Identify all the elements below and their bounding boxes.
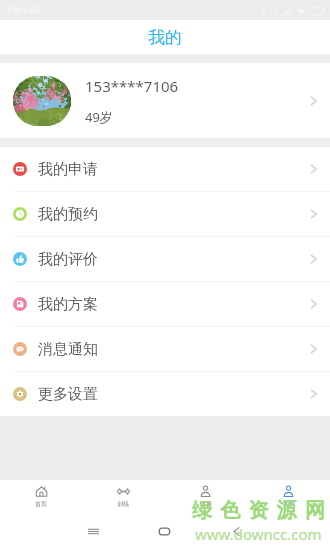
staticText: 我的方案 bbox=[38, 295, 98, 314]
staticText: 绿色资源网 bbox=[188, 498, 329, 523]
button[interactable]: 首页 bbox=[0, 480, 82, 512]
button[interactable]: 更多设置 bbox=[0, 372, 330, 416]
button[interactable]: 训练 bbox=[82, 480, 164, 512]
staticText: 我的预约 bbox=[38, 205, 98, 224]
staticText: 我的评价 bbox=[38, 250, 98, 269]
staticText: 消息通知 bbox=[38, 340, 98, 359]
button[interactable]: 我的申请 bbox=[0, 147, 330, 191]
button[interactable]: 我的评价 bbox=[0, 237, 330, 281]
staticText: 下午2:48 bbox=[4, 4, 40, 16]
other: Recent apps bbox=[88, 526, 99, 537]
staticText: 我的 bbox=[283, 500, 295, 508]
staticText: 我的申请 bbox=[38, 160, 98, 179]
button[interactable]: 我的预约 bbox=[0, 192, 330, 236]
button[interactable]: 我的 bbox=[247, 480, 330, 512]
staticText: 训练 bbox=[117, 500, 129, 508]
staticText: 首页 bbox=[35, 500, 47, 508]
button[interactable]: 153****7106 bbox=[0, 63, 330, 138]
staticText: www.downcc.com bbox=[195, 524, 322, 544]
staticText: 健康 bbox=[200, 500, 212, 508]
staticText: 更多设置 bbox=[38, 385, 98, 404]
staticText: 我的 bbox=[148, 27, 182, 48]
other: Home bbox=[158, 526, 171, 537]
other: Back bbox=[231, 526, 242, 537]
button[interactable]: 健康 bbox=[164, 480, 247, 512]
button[interactable]: 消息通知 bbox=[0, 327, 330, 371]
staticText: 153****7106 bbox=[85, 76, 179, 96]
staticText: 49岁 bbox=[85, 108, 113, 126]
button[interactable]: 我的方案 bbox=[0, 282, 330, 326]
